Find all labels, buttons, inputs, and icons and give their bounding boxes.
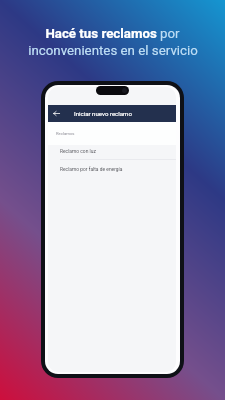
- staticText: Reclamo con luz: [60, 148, 96, 154]
- staticText: Hacé tus reclamos por: [45, 26, 180, 42]
- staticText: Iniciar nuevo reclamo: [74, 110, 132, 117]
- staticText: Reclamos: [56, 131, 75, 136]
- staticText: inconvenientes en el servicio: [28, 43, 198, 59]
- button[interactable]: Reclamo por falta de energía: [48, 160, 176, 177]
- button[interactable]: Reclamo con luz: [48, 142, 176, 159]
- staticText: Reclamo por falta de energía: [60, 166, 123, 172]
- button[interactable]: Back: [48, 105, 176, 122]
- other: Back: [53, 110, 60, 117]
